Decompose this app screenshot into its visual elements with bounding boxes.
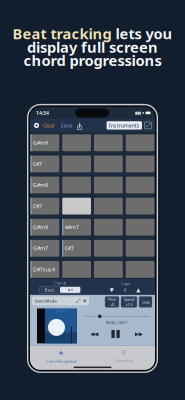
staticText: ✕ (82, 298, 86, 304)
button[interactable]: Loop (139, 296, 152, 307)
button[interactable]: Save (58, 122, 74, 129)
staticText: Speed (124, 297, 134, 302)
button[interactable] (62, 198, 91, 214)
staticText: ▲ (136, 287, 140, 293)
staticText: ▴ (78, 121, 80, 126)
staticText: G#m9 (33, 224, 48, 231)
button[interactable]: Pause (105, 330, 128, 338)
button[interactable]: G#m9 (30, 134, 59, 151)
button[interactable] (126, 134, 155, 151)
staticText: Pitch (108, 297, 116, 302)
staticText: G#m9 (33, 139, 48, 146)
button[interactable] (94, 198, 123, 214)
button[interactable]: Clear (39, 122, 58, 129)
staticText: ▾ (142, 111, 144, 115)
staticText: lets you (111, 24, 172, 43)
button[interactable]: C#7 (30, 155, 59, 172)
staticText: C#7 (65, 245, 74, 252)
staticText: Beat tracking (12, 24, 111, 43)
staticText: display full screen (27, 37, 158, 57)
staticText: Chord List (115, 358, 133, 363)
button[interactable] (126, 177, 155, 193)
button[interactable] (62, 155, 91, 172)
staticText: ▮▮▮ (135, 111, 141, 115)
button[interactable] (62, 134, 91, 151)
staticText: ⤢ (146, 123, 150, 128)
staticText: Basic (45, 287, 55, 292)
button[interactable]: ✦ (30, 349, 92, 364)
staticText: All (68, 287, 73, 292)
button[interactable]: Instruments (107, 121, 142, 130)
staticText: ⤢ (76, 298, 80, 303)
button[interactable]: Pitch (105, 296, 119, 307)
staticText: 14:34 (36, 109, 49, 116)
staticText: Save (60, 122, 72, 129)
button[interactable] (126, 219, 155, 236)
button[interactable]: Select Media (32, 296, 89, 305)
button[interactable] (94, 240, 123, 257)
button[interactable] (94, 177, 123, 193)
button[interactable]: Fast forward (128, 331, 150, 337)
staticText: D#7sus4 (33, 266, 55, 273)
staticText: ☰ (121, 349, 127, 357)
button[interactable]: Full screen (144, 122, 151, 129)
button[interactable]: All (60, 287, 80, 293)
button[interactable]: Rewind (83, 331, 105, 337)
staticText: x1.0 (125, 302, 132, 307)
button[interactable]: C#7 (30, 198, 59, 214)
staticText: G#m9 (33, 181, 48, 189)
staticText: ▶▶ (135, 331, 143, 337)
button[interactable] (126, 261, 155, 278)
staticText: ✦ (58, 349, 65, 358)
staticText: G#m7 (33, 245, 48, 252)
button[interactable]: D#7sus4 (30, 261, 59, 278)
button[interactable]: G#m7 (30, 240, 59, 257)
button[interactable]: G#m9 (30, 219, 59, 236)
staticText: ◀◀ (90, 331, 98, 337)
button[interactable]: Speed (121, 296, 137, 307)
staticText: ▋▋ (111, 330, 121, 338)
staticText: Chords (53, 280, 66, 285)
staticText: dreamtxt (55, 309, 66, 313)
button[interactable] (62, 261, 91, 278)
staticText: 00:44 | 04:11 (105, 320, 127, 325)
button[interactable] (94, 219, 123, 236)
button[interactable]: A#m7 (62, 219, 91, 236)
staticText: 0 (124, 287, 126, 292)
staticText: C#7 (33, 203, 42, 210)
staticText: A#m7 (65, 224, 79, 231)
staticText: Instruments (109, 122, 140, 129)
button[interactable]: Settings (33, 122, 39, 128)
staticText: Capo (120, 281, 129, 286)
button[interactable] (62, 177, 91, 193)
button[interactable] (126, 198, 155, 214)
staticText: chord progressions (23, 50, 161, 70)
button[interactable] (94, 155, 123, 172)
button[interactable]: Capo up (132, 287, 145, 293)
button[interactable]: Share (77, 122, 82, 129)
staticText: Loop (141, 299, 149, 304)
button[interactable]: Basic (40, 287, 60, 293)
button[interactable] (94, 134, 123, 151)
button[interactable] (94, 261, 123, 278)
button[interactable]: Capo down (105, 287, 118, 293)
button[interactable]: G#m9 (30, 177, 59, 193)
staticText: Clear (43, 122, 55, 129)
staticText: Chord Recognition (46, 358, 77, 364)
staticText: ▼ (110, 287, 114, 293)
staticText: C#7 (33, 160, 42, 167)
button[interactable] (126, 240, 155, 257)
button[interactable] (126, 155, 155, 172)
button[interactable]: C#7 (62, 240, 91, 257)
staticText: Select Media (34, 298, 56, 303)
button[interactable]: ☰ (92, 349, 155, 363)
staticText: +0 (110, 302, 114, 307)
